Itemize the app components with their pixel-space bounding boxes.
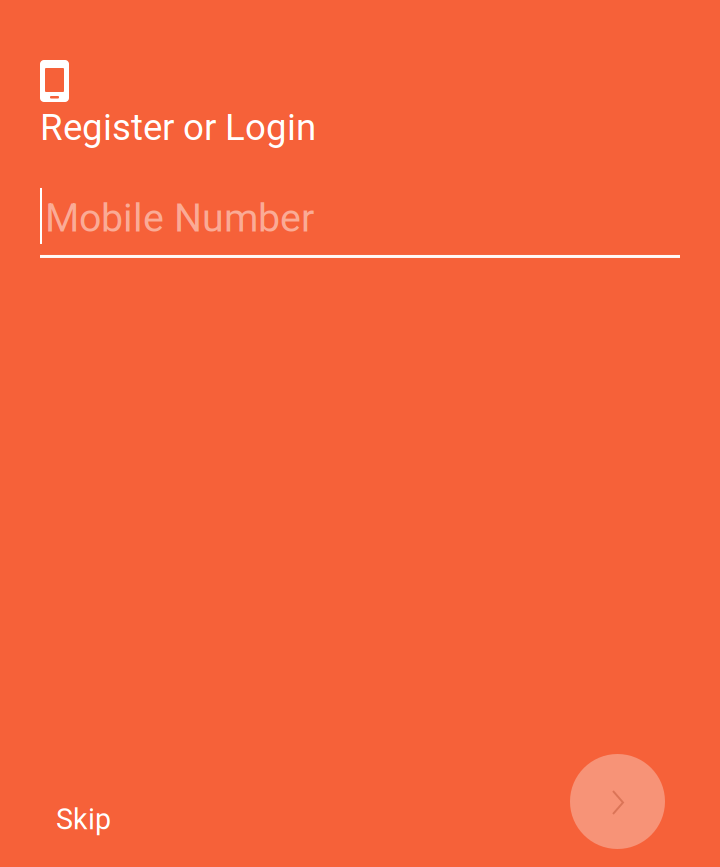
staticText: Skip	[56, 803, 111, 836]
staticText: Mobile Number	[45, 195, 314, 241]
staticText: Register or Login	[40, 106, 316, 149]
button[interactable]: Mobile Number	[40, 188, 665, 258]
button[interactable]: Skip	[38, 789, 129, 850]
button[interactable]: Next	[570, 754, 665, 849]
